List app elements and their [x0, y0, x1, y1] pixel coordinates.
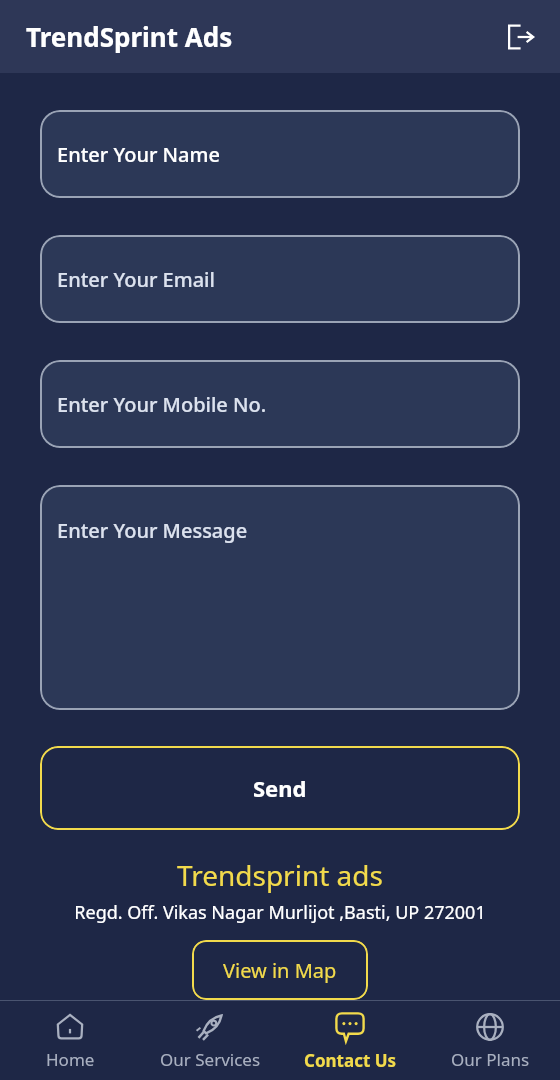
button[interactable]: Our Services [140, 1001, 280, 1080]
staticText: Enter Your Mobile No. [57, 391, 267, 418]
staticText: Trendsprint ads [177, 856, 383, 894]
staticText: Enter Your Name [57, 141, 220, 168]
staticText: Our Plans [451, 1048, 530, 1071]
staticText: Enter Your Message [57, 517, 248, 544]
button[interactable]: Home [0, 1001, 140, 1080]
staticText: Our Services [160, 1048, 261, 1071]
button[interactable]: View in Map [192, 940, 368, 1000]
button[interactable]: Send [40, 746, 520, 830]
staticText: Home [46, 1048, 95, 1071]
button[interactable]: Our Plans [420, 1001, 560, 1080]
button[interactable]: Logout [496, 13, 544, 61]
button[interactable]: Enter Your Mobile No. [40, 360, 520, 448]
button[interactable]: Contact Us [280, 1001, 420, 1080]
staticText: Regd. Off. Vikas Nagar Murlijot ,Basti, … [74, 900, 486, 925]
staticText: TrendSprint Ads [26, 19, 233, 54]
staticText: Send [253, 773, 307, 803]
button[interactable]: Enter Your Message [40, 485, 520, 710]
button[interactable]: Enter Your Email [40, 235, 520, 323]
button[interactable]: Enter Your Name [40, 110, 520, 198]
staticText: View in Map [223, 957, 337, 984]
staticText: Contact Us [304, 1049, 397, 1072]
staticText: Enter Your Email [57, 266, 215, 293]
